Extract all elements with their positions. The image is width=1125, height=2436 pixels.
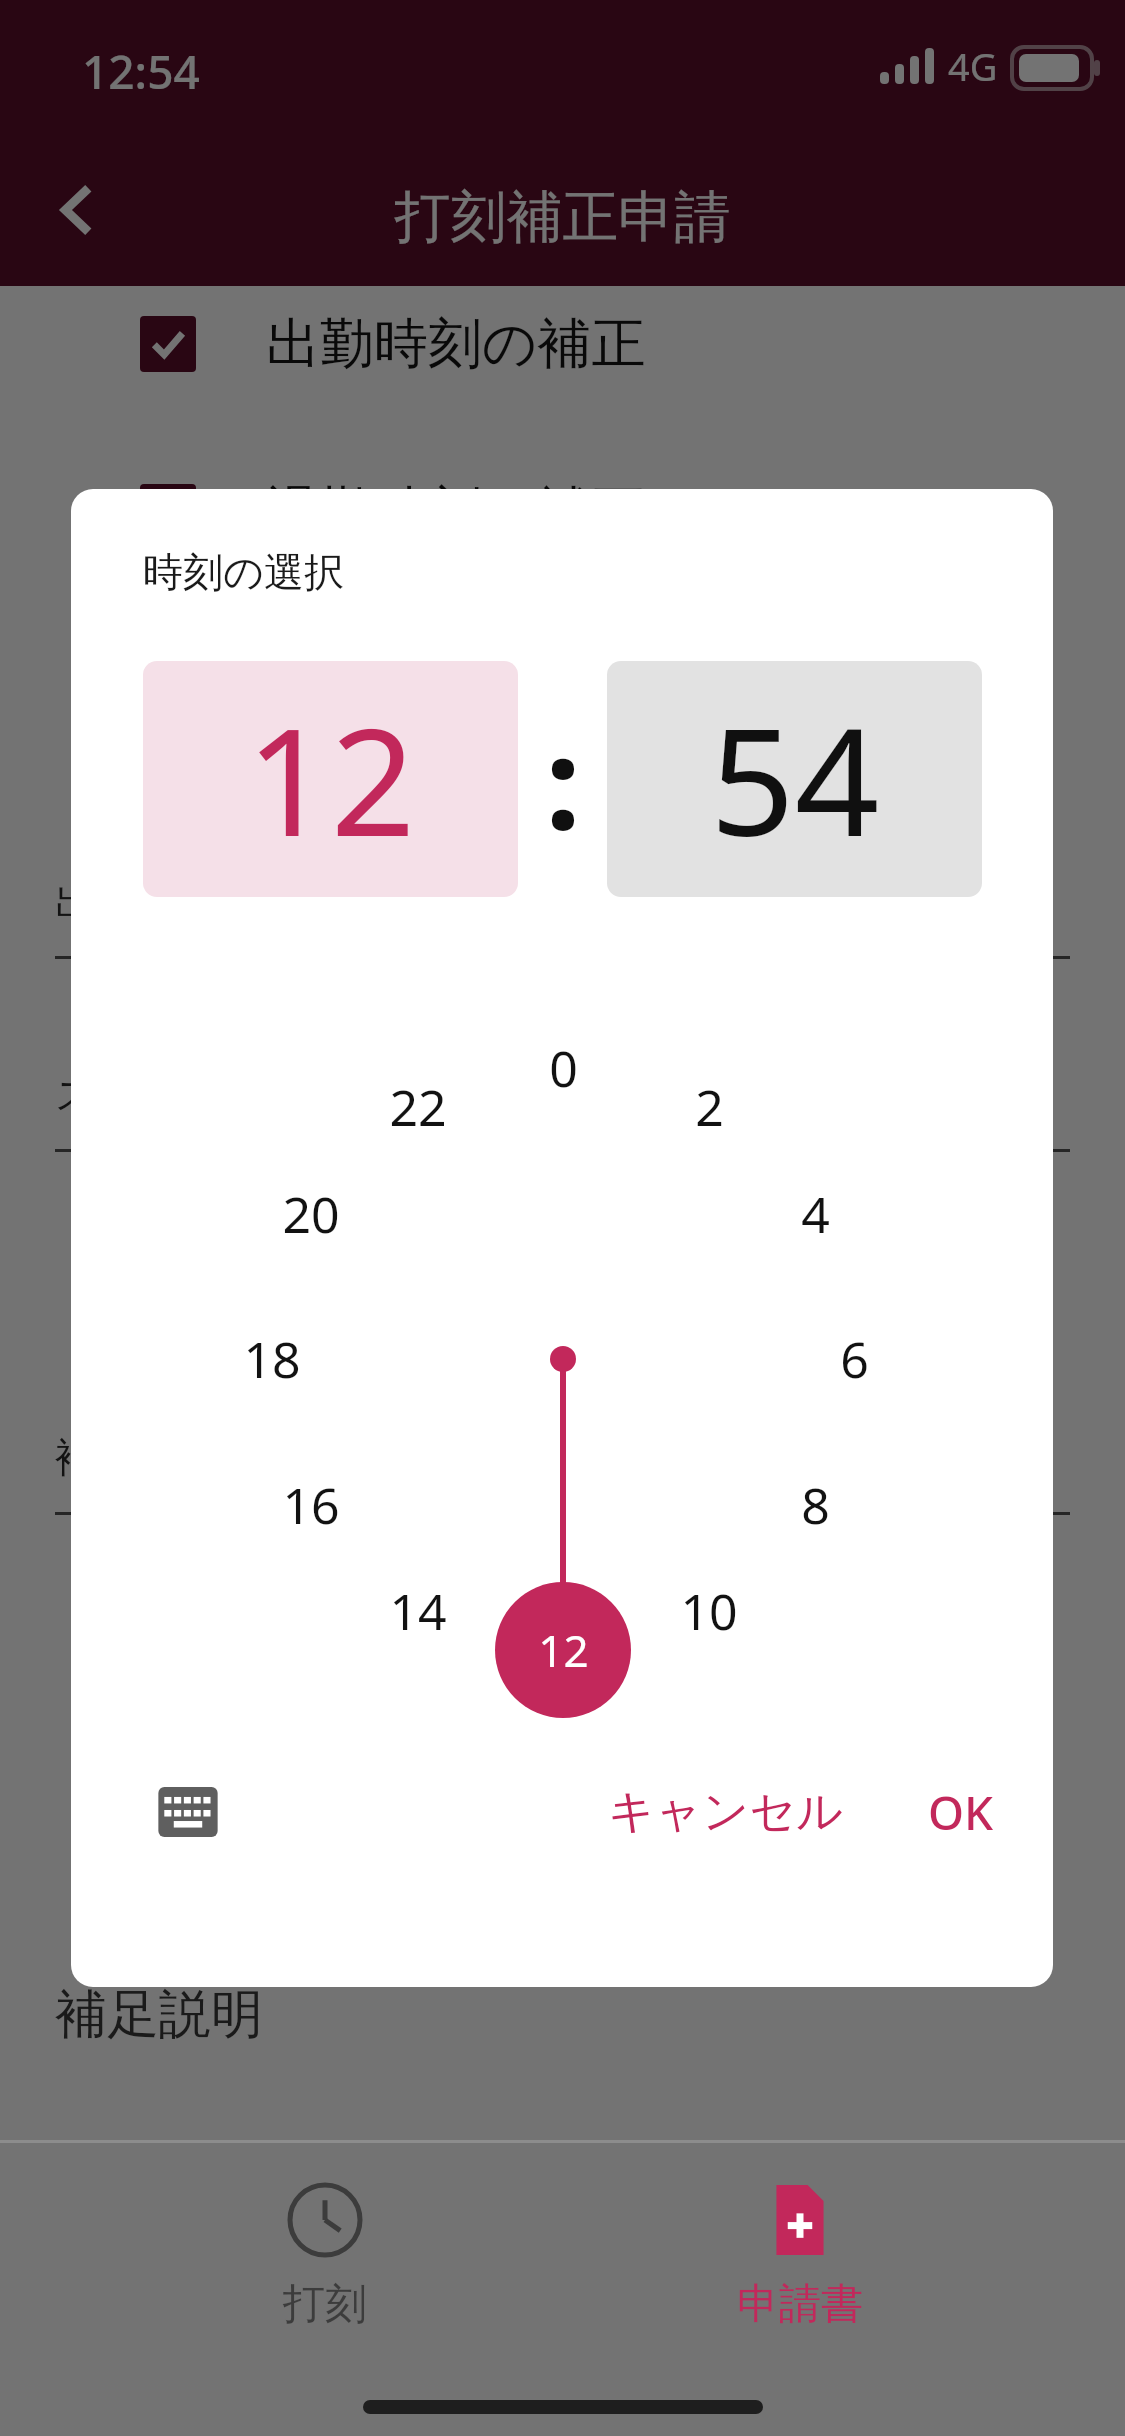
staticText: 6 [840, 1325, 869, 1393]
staticText: 10 [680, 1577, 738, 1645]
staticText: 8 [801, 1471, 830, 1539]
staticText: 12:54 [82, 40, 200, 103]
staticText: 54 [710, 678, 880, 880]
button[interactable]: 20 [256, 1169, 366, 1259]
staticText: OK [928, 1781, 994, 1844]
staticText: キャンセル [608, 1783, 844, 1841]
button[interactable]: Back [30, 160, 130, 260]
staticText: 出 [55, 876, 95, 926]
staticText: 申請書 [737, 2278, 863, 2331]
staticText: 打刻補正申請 [0, 182, 1125, 253]
button[interactable]: キャンセル [596, 1757, 856, 1867]
button[interactable]: 6 [799, 1314, 909, 1404]
button[interactable]: 12 [143, 661, 518, 897]
staticText: 14 [389, 1577, 447, 1645]
staticText: 4G [948, 40, 998, 92]
staticText: 22 [389, 1073, 447, 1141]
staticText: 打刻 [283, 2278, 367, 2331]
button[interactable]: Switch to text input [133, 1757, 243, 1867]
staticText: 時刻の選択 [143, 547, 344, 597]
staticText: 出勤時刻の補正 [266, 310, 646, 378]
button[interactable]: 2 [654, 1062, 764, 1152]
button[interactable]: 54 [607, 661, 982, 897]
staticText: 16 [282, 1471, 340, 1539]
button[interactable]: OK [891, 1757, 1031, 1867]
staticText: 12 [246, 678, 416, 880]
staticText: 0 [549, 1034, 578, 1102]
staticText: ス [55, 1069, 96, 1119]
button[interactable]: 12 [508, 1605, 618, 1695]
button[interactable]: 0 [508, 1023, 618, 1113]
button[interactable]: 8 [760, 1460, 870, 1550]
staticText: : [545, 692, 581, 866]
button[interactable]: 16 [256, 1460, 366, 1550]
staticText: 2 [695, 1073, 724, 1141]
staticText: 20 [282, 1180, 340, 1248]
button[interactable]: 打刻 [175, 2170, 475, 2343]
button[interactable]: 10 [654, 1566, 764, 1656]
staticText: 補 [55, 1432, 95, 1482]
button[interactable]: 申請書 [650, 2170, 950, 2343]
button[interactable]: 22 [363, 1062, 473, 1152]
button[interactable]: 4 [760, 1169, 870, 1259]
button[interactable] [140, 484, 196, 540]
staticText: 18 [243, 1325, 301, 1393]
button[interactable]: 18 [217, 1314, 327, 1404]
staticText: 補足説明 [55, 1982, 263, 2048]
staticText: 退勤時刻の補正 [266, 478, 646, 546]
staticText: 12 [538, 1620, 589, 1680]
staticText: 4 [801, 1180, 830, 1248]
button[interactable] [140, 316, 196, 372]
button[interactable]: 14 [363, 1566, 473, 1656]
